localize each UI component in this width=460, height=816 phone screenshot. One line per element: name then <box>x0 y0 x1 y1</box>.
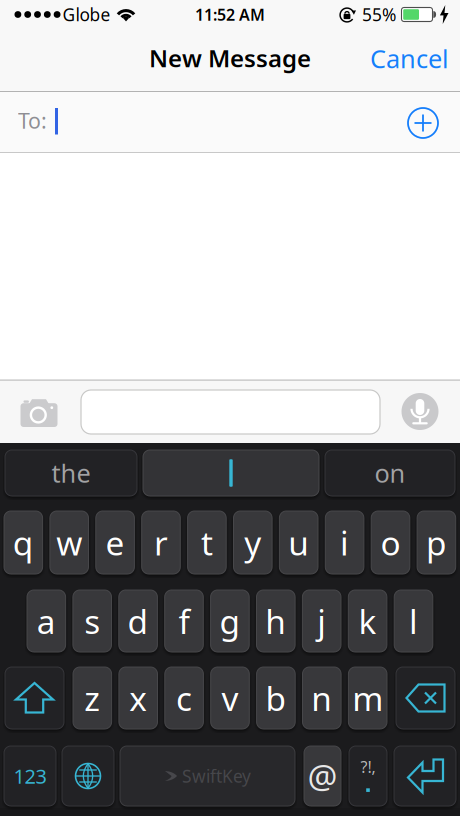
button[interactable]: @ <box>304 746 341 806</box>
staticText: v <box>221 676 238 720</box>
button[interactable]: the <box>5 450 137 496</box>
button[interactable]: ?!, <box>349 746 387 806</box>
staticText: t <box>201 520 213 565</box>
button[interactable]: c <box>165 667 203 729</box>
staticText: c <box>176 676 192 720</box>
staticText: h <box>265 599 286 643</box>
staticText: d <box>128 599 149 643</box>
staticText: g <box>219 599 240 643</box>
button[interactable]: x <box>119 667 157 729</box>
button[interactable]: g <box>211 590 249 652</box>
staticText: b <box>265 676 286 720</box>
staticText: o <box>380 520 400 565</box>
button[interactable]: a <box>27 590 66 652</box>
button[interactable]: Delete <box>396 667 455 729</box>
button[interactable]: 123 <box>4 746 56 806</box>
button[interactable]: i <box>325 511 364 574</box>
button[interactable]: u <box>279 511 318 574</box>
button[interactable]: v <box>211 667 249 729</box>
staticText: f <box>178 599 189 643</box>
staticText: r <box>154 520 168 565</box>
button[interactable]: Next Keyboard <box>62 746 114 806</box>
button[interactable]: Cancel <box>370 42 449 75</box>
staticText: l <box>409 599 418 643</box>
staticText: To: <box>18 106 47 135</box>
staticText: s <box>84 599 100 643</box>
button[interactable]: s <box>73 590 111 652</box>
button[interactable]: l <box>394 590 433 652</box>
button[interactable]: d <box>119 590 157 652</box>
button[interactable]: Add Contact <box>407 107 439 139</box>
staticText: z <box>84 676 100 720</box>
staticText: k <box>359 599 377 643</box>
staticText: 123 <box>13 763 46 789</box>
staticText: y <box>244 520 261 565</box>
staticText: m <box>352 676 383 720</box>
staticText: u <box>288 520 309 565</box>
button[interactable]: Shift <box>5 667 64 729</box>
staticText: Cancel <box>370 42 449 75</box>
staticText: the <box>51 456 90 490</box>
button[interactable]: o <box>371 511 410 574</box>
button[interactable]: b <box>257 667 295 729</box>
staticText: j <box>317 599 326 643</box>
button[interactable]: Camera <box>20 397 57 427</box>
button[interactable]: r <box>142 511 180 574</box>
staticText: w <box>56 520 82 565</box>
staticText: on <box>374 456 405 490</box>
staticText: n <box>311 676 332 720</box>
staticText: a <box>37 599 56 643</box>
button[interactable]: p <box>417 511 456 574</box>
button[interactable]: Space <box>120 746 295 806</box>
staticText: New Message <box>149 42 311 74</box>
staticText: e <box>106 520 125 565</box>
button[interactable]: q <box>4 511 43 574</box>
staticText: 55% <box>362 3 396 26</box>
button[interactable]: m <box>348 667 387 729</box>
staticText: @ <box>307 754 337 798</box>
staticText: i <box>340 520 349 565</box>
button[interactable]: n <box>302 667 341 729</box>
button[interactable]: f <box>165 590 203 652</box>
staticText: Globe <box>62 3 110 26</box>
staticText: SwiftKey <box>182 764 251 787</box>
button[interactable]: w <box>50 511 88 574</box>
button[interactable]: Return <box>394 746 456 806</box>
button[interactable]: h <box>256 590 295 652</box>
button[interactable]: e <box>96 511 134 574</box>
button[interactable]: I <box>143 450 319 496</box>
button[interactable]: Dictate <box>401 393 438 430</box>
staticText: q <box>13 520 34 565</box>
staticText: ?!, <box>360 756 375 777</box>
button[interactable]: z <box>73 667 112 729</box>
button[interactable]: y <box>233 511 272 574</box>
staticText: 11:52 AM <box>195 4 265 25</box>
staticText: p <box>426 520 447 565</box>
staticText: x <box>129 676 147 720</box>
button[interactable]: on <box>325 450 455 496</box>
button[interactable]: Message <box>81 390 380 434</box>
button[interactable]: k <box>348 590 387 652</box>
button[interactable]: t <box>188 511 226 574</box>
button[interactable]: j <box>302 590 341 652</box>
